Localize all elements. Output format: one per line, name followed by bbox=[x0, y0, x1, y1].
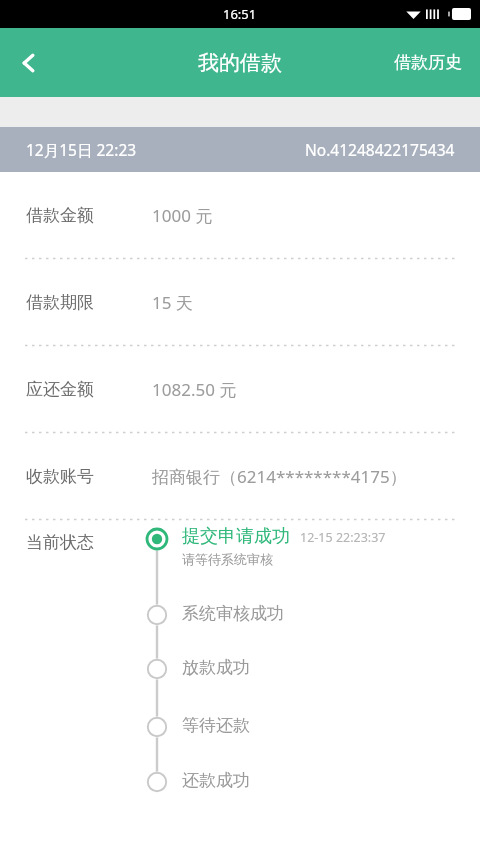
button[interactable]: 借款历史 bbox=[382, 28, 480, 97]
staticText: 借款金额 bbox=[26, 205, 94, 226]
staticText: 16:51 bbox=[223, 5, 257, 23]
staticText: No.41248422175434 bbox=[305, 139, 455, 160]
staticText: 12-15 22:23:37 bbox=[300, 529, 386, 546]
staticText: 还款成功 bbox=[182, 770, 250, 791]
staticText: 提交申请成功 bbox=[182, 525, 290, 548]
button[interactable]: 收款账号 bbox=[0, 433, 480, 519]
staticText: 招商银行（6214********4175） bbox=[152, 465, 407, 488]
staticText: 等待还款 bbox=[182, 715, 250, 736]
button[interactable]: 应还金额 bbox=[0, 346, 480, 432]
staticText: 15 天 bbox=[152, 291, 193, 314]
staticText: 请等待系统审核 bbox=[182, 551, 273, 567]
button[interactable]: 借款期限 bbox=[0, 259, 480, 345]
button[interactable]: Back bbox=[0, 28, 58, 97]
staticText: 当前状态 bbox=[26, 532, 94, 553]
staticText: 借款历史 bbox=[394, 52, 462, 73]
staticText: 收款账号 bbox=[26, 466, 94, 487]
staticText: 1082.50 元 bbox=[152, 378, 237, 401]
staticText: 系统审核成功 bbox=[182, 603, 284, 624]
staticText: 1000 元 bbox=[152, 204, 213, 227]
button[interactable]: 借款金额 bbox=[0, 172, 480, 258]
staticText: 借款期限 bbox=[26, 292, 94, 313]
staticText: 12月15日 22:23 bbox=[26, 139, 137, 160]
staticText: 应还金额 bbox=[26, 379, 94, 400]
staticText: 我的借款 bbox=[198, 50, 282, 76]
staticText: 放款成功 bbox=[182, 657, 250, 678]
